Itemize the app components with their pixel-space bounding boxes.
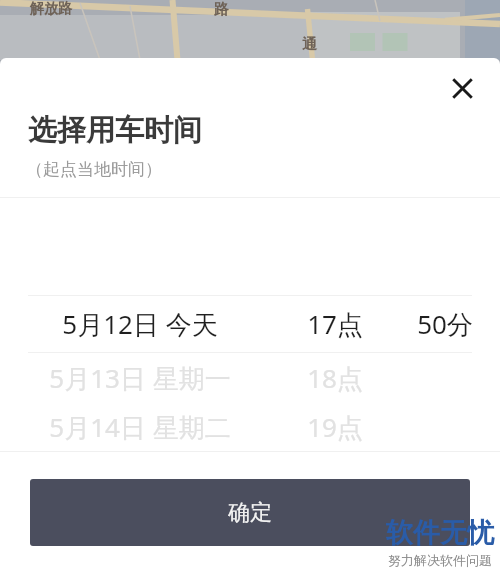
staticText: 解放路 xyxy=(30,0,72,18)
staticText: 19点 xyxy=(307,409,363,445)
staticText: 努力解决软件问题 xyxy=(388,552,492,568)
staticText: 路 xyxy=(214,0,229,19)
button[interactable]: 确定 xyxy=(30,479,470,546)
staticText: 5月13日 星期一 xyxy=(49,360,231,396)
button[interactable]: 5月13日 星期一 xyxy=(0,353,500,402)
staticText: 确定 xyxy=(228,499,272,527)
staticText: （起点当地时间） xyxy=(26,159,162,180)
staticText: 18点 xyxy=(307,360,363,396)
staticText: 软件无忧 xyxy=(386,516,494,550)
staticText: 5月12日 今天 xyxy=(62,306,218,342)
staticText: 50分 xyxy=(417,306,473,342)
button[interactable]: 5月12日 今天 xyxy=(0,296,500,352)
button[interactable]: Close xyxy=(438,64,486,112)
staticText: 通 xyxy=(302,35,317,54)
staticText: 选择用车时间 xyxy=(28,112,202,149)
staticText: 5月14日 星期二 xyxy=(49,409,231,445)
staticText: 17点 xyxy=(307,306,363,342)
button[interactable]: 5月14日 星期二 xyxy=(0,402,500,451)
